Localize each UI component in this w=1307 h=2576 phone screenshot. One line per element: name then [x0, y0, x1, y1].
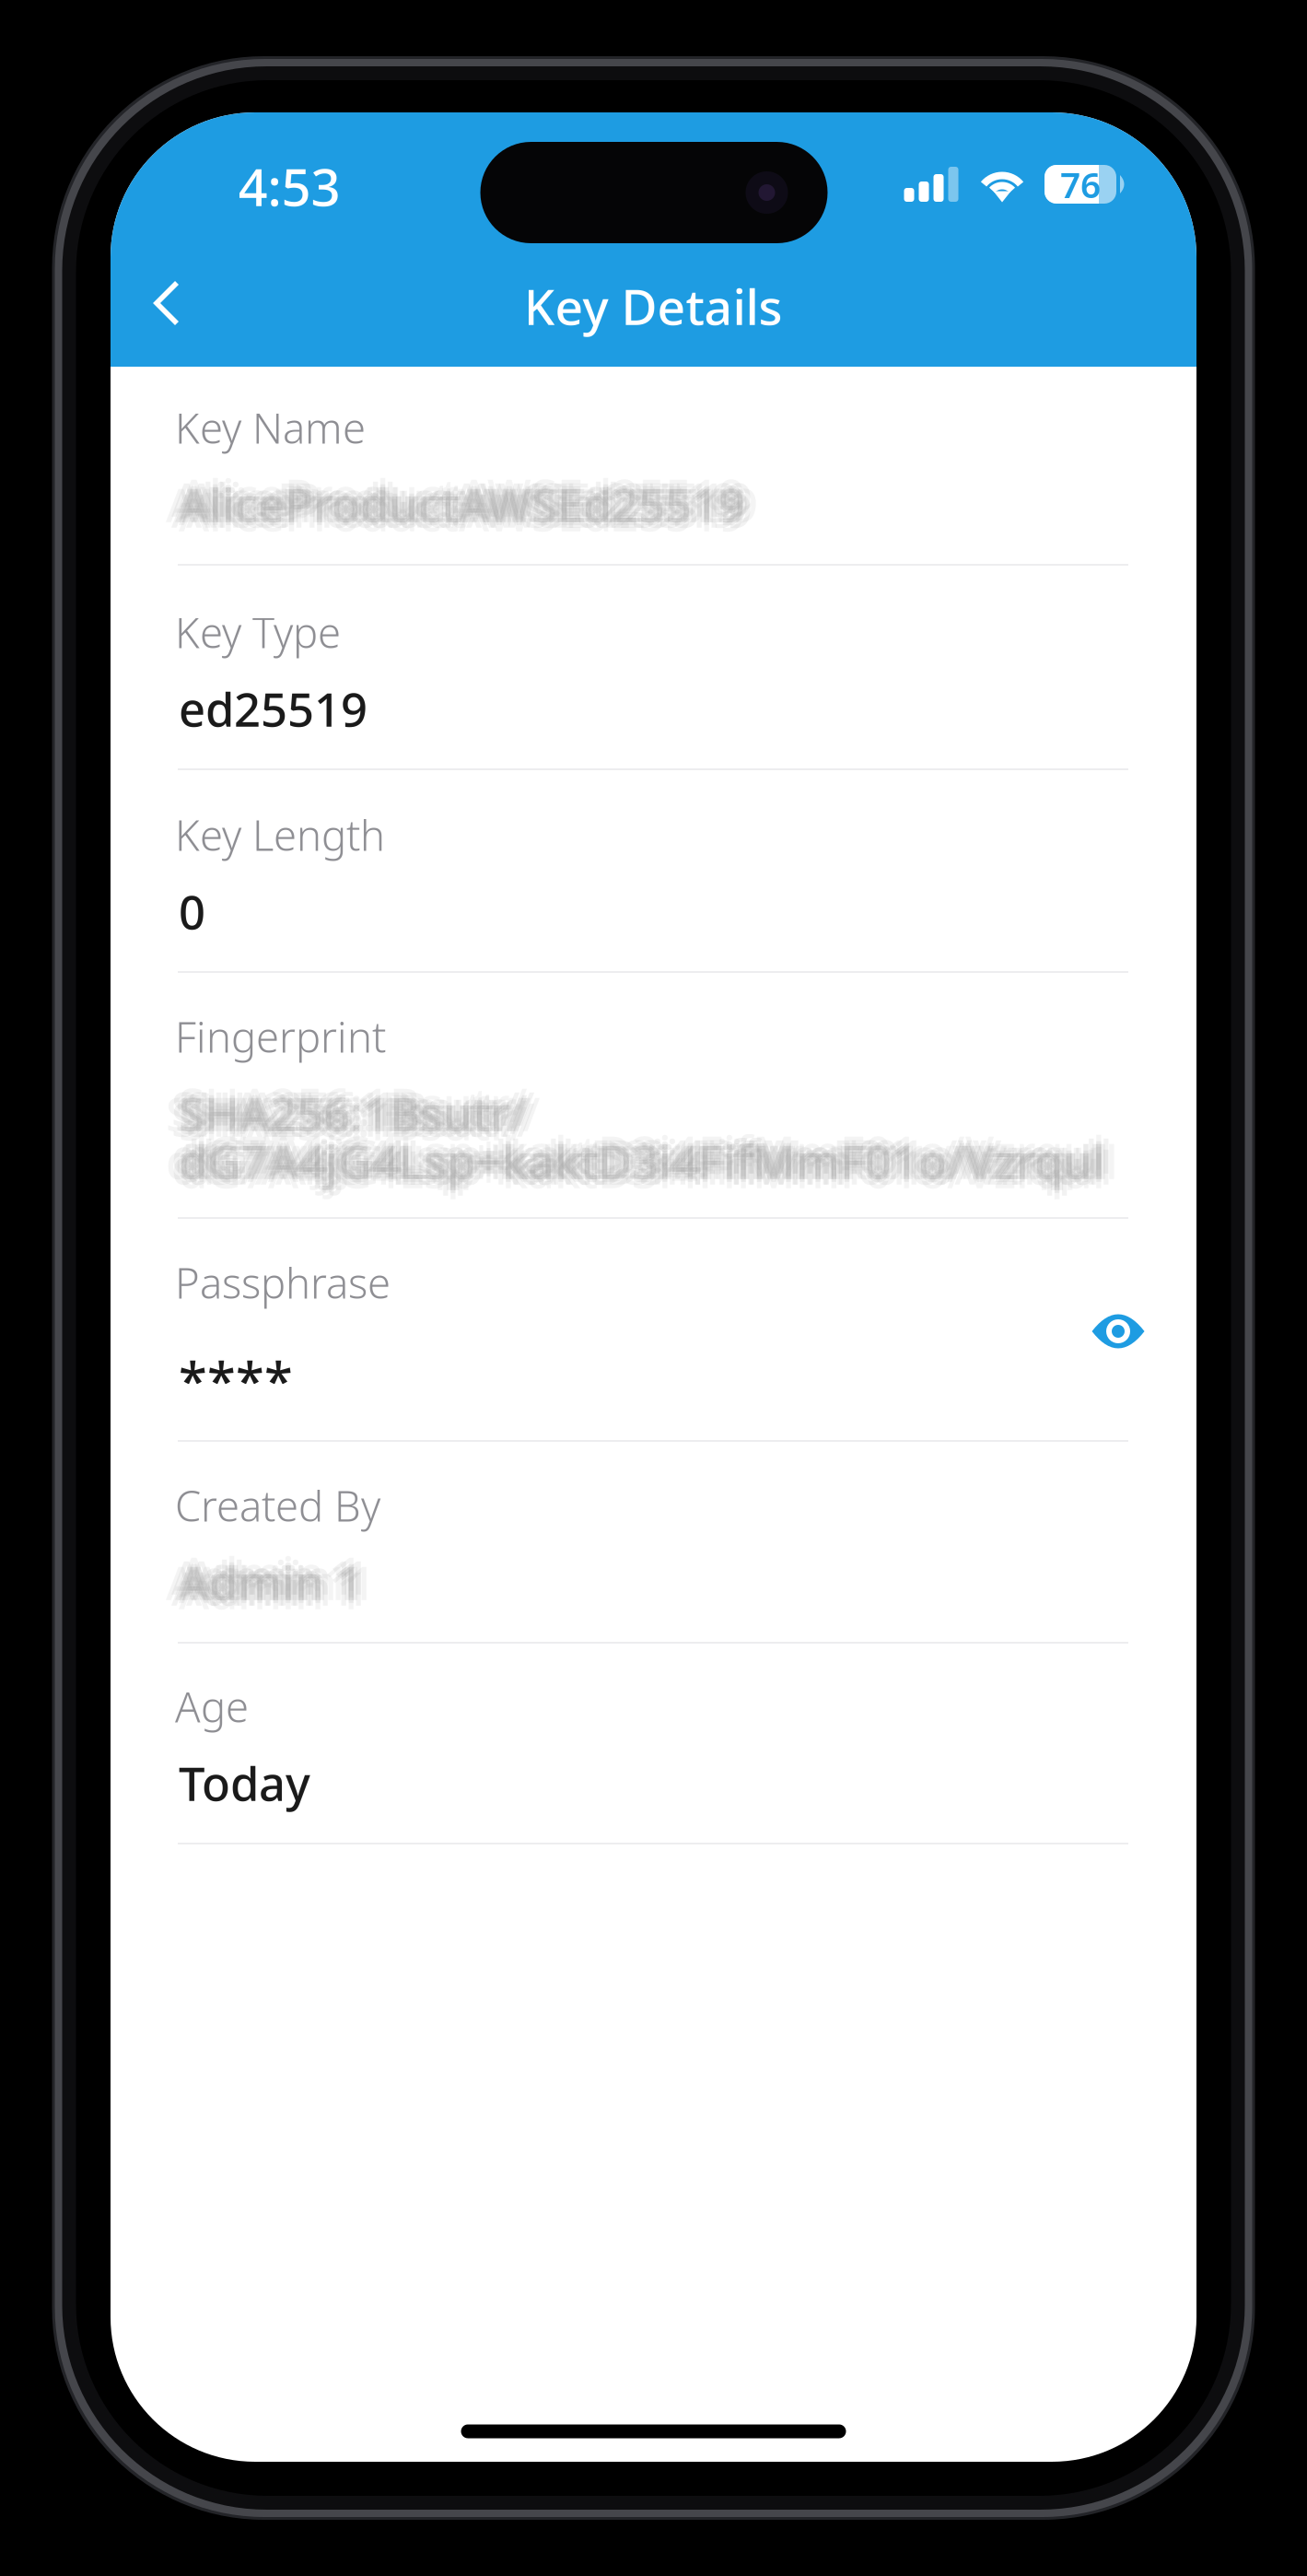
staticText: SHA256:1Bsutr/ — [182, 1082, 531, 1144]
staticText: AliceProductAWSEd25519 — [179, 482, 745, 544]
staticText: SHA256:1Bsutr/ — [171, 1088, 520, 1150]
staticText: SHA256:1Bsutr/ — [179, 1091, 528, 1153]
staticText: Fingerprint — [175, 1009, 386, 1064]
staticText: Age — [175, 1679, 249, 1734]
staticText: SHA256:1Bsutr/ — [175, 1082, 524, 1144]
button[interactable]: Show passphrase — [1074, 1293, 1162, 1370]
staticText: SHA256:1Bsutr/ — [192, 1082, 541, 1144]
staticText: dG7A4jG4Lsp+kaktD3i4FifMmF01o/Vzrqul — [171, 1124, 1098, 1186]
staticText: Created By — [175, 1478, 380, 1533]
staticText: AliceProductAWSEd25519 — [186, 467, 753, 529]
staticText: Passphrase — [175, 1255, 391, 1310]
staticText: **** — [179, 1345, 293, 1413]
staticText: AliceProductAWSEd25519 — [179, 464, 745, 526]
staticText: Admin 1 — [179, 1542, 363, 1604]
staticText: dG7A4jG4Lsp+kaktD3i4FifMmF01o/Vzrqul — [166, 1130, 1092, 1192]
staticText: AliceProductAWSEd25519 — [175, 473, 741, 535]
staticText: SHA256:1Bsutr/ — [186, 1088, 535, 1150]
staticText: AliceProductAWSEd25519 — [182, 473, 749, 535]
staticText: Key Length — [175, 807, 385, 862]
staticText: Admin 1 — [166, 1551, 350, 1613]
staticText: Key Type — [175, 604, 341, 660]
staticText: Today — [179, 1752, 310, 1814]
staticText: Admin 1 — [171, 1545, 356, 1607]
staticText: Admin 1 — [186, 1556, 370, 1618]
staticText: Admin 1 — [171, 1556, 356, 1618]
staticText: AliceProductAWSEd25519 — [179, 473, 745, 535]
staticText: dG7A4jG4Lsp+kaktD3i4FifMmF01o/Vzrqul — [192, 1130, 1118, 1192]
staticText: AliceProductAWSEd25519 — [179, 476, 745, 538]
staticText: ed25519 — [179, 678, 368, 740]
staticText: AliceProductAWSEd25519 — [192, 473, 758, 535]
staticText: AliceProductAWSEd25519 — [171, 479, 738, 541]
staticText: 4:53 — [238, 152, 340, 220]
staticText: dG7A4jG4Lsp+kaktD3i4FifMmF01o/Vzrqul — [186, 1124, 1113, 1186]
staticText: dG7A4jG4Lsp+kaktD3i4FifMmF01o/Vzrqul — [186, 1135, 1113, 1197]
staticText: SHA256:1Bsutr/ — [186, 1076, 535, 1138]
button[interactable]: Back — [118, 257, 217, 349]
staticText: Key Details — [524, 273, 782, 338]
staticText: dG7A4jG4Lsp+kaktD3i4FifMmF01o/Vzrqul — [179, 1121, 1105, 1183]
staticText: Admin 1 — [186, 1545, 370, 1607]
staticText: dG7A4jG4Lsp+kaktD3i4FifMmF01o/Vzrqul — [175, 1130, 1102, 1192]
staticText: dG7A4jG4Lsp+kaktD3i4FifMmF01o/Vzrqul — [179, 1139, 1105, 1201]
staticText: dG7A4jG4Lsp+kaktD3i4FifMmF01o/Vzrqul — [182, 1130, 1109, 1192]
staticText: SHA256:1Bsutr/ — [171, 1076, 520, 1138]
staticText: SHA256:1Bsutr/ — [179, 1085, 528, 1147]
staticText: dG7A4jG4Lsp+kaktD3i4FifMmF01o/Vzrqul — [171, 1135, 1098, 1197]
staticText: dG7A4jG4Lsp+kaktD3i4FifMmF01o/Vzrqul — [179, 1133, 1105, 1195]
staticText: Admin 1 — [175, 1551, 359, 1613]
staticText: 0 — [179, 880, 205, 942]
staticText: Admin 1 — [182, 1551, 367, 1613]
staticText: SHA256:1Bsutr/ — [179, 1079, 528, 1141]
staticText: AliceProductAWSEd25519 — [186, 479, 753, 541]
staticText: dG7A4jG4Lsp+kaktD3i4FifMmF01o/Vzrqul — [179, 1127, 1105, 1189]
staticText: Admin 1 — [179, 1554, 363, 1616]
staticText: Admin 1 — [179, 1560, 363, 1622]
staticText: SHA256:1Bsutr/ — [179, 1082, 528, 1144]
staticText: SHA256:1Bsutr/ — [166, 1082, 515, 1144]
staticText: SHA256:1Bsutr/ — [179, 1073, 528, 1135]
staticText: AliceProductAWSEd25519 — [179, 470, 745, 532]
staticText: AliceProductAWSEd25519 — [166, 473, 732, 535]
staticText: dG7A4jG4Lsp+kaktD3i4FifMmF01o/Vzrqul — [179, 1130, 1105, 1192]
staticText: Admin 1 — [192, 1551, 376, 1613]
staticText: Admin 1 — [179, 1551, 363, 1613]
staticText: AliceProductAWSEd25519 — [171, 467, 738, 529]
staticText: 76 — [1060, 161, 1101, 208]
staticText: Admin 1 — [179, 1548, 363, 1610]
staticText: Key Name — [175, 400, 366, 455]
